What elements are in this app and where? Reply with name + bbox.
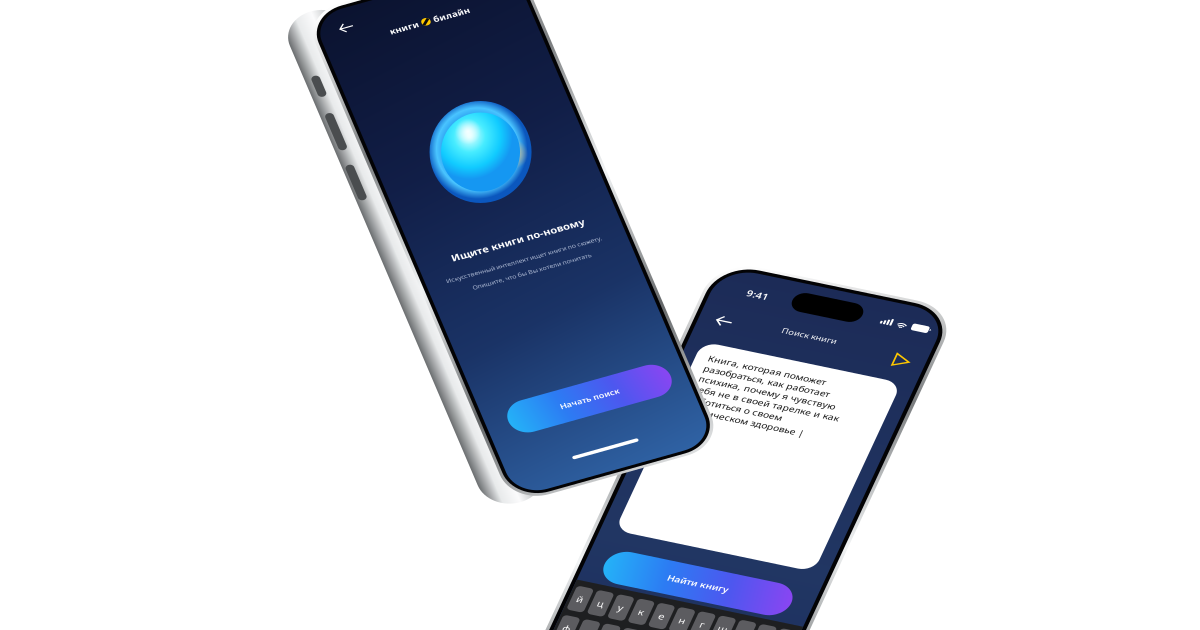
button[interactable]: Отправить: [356, 115, 390, 147]
staticText: билайн: [302, 83, 375, 107]
